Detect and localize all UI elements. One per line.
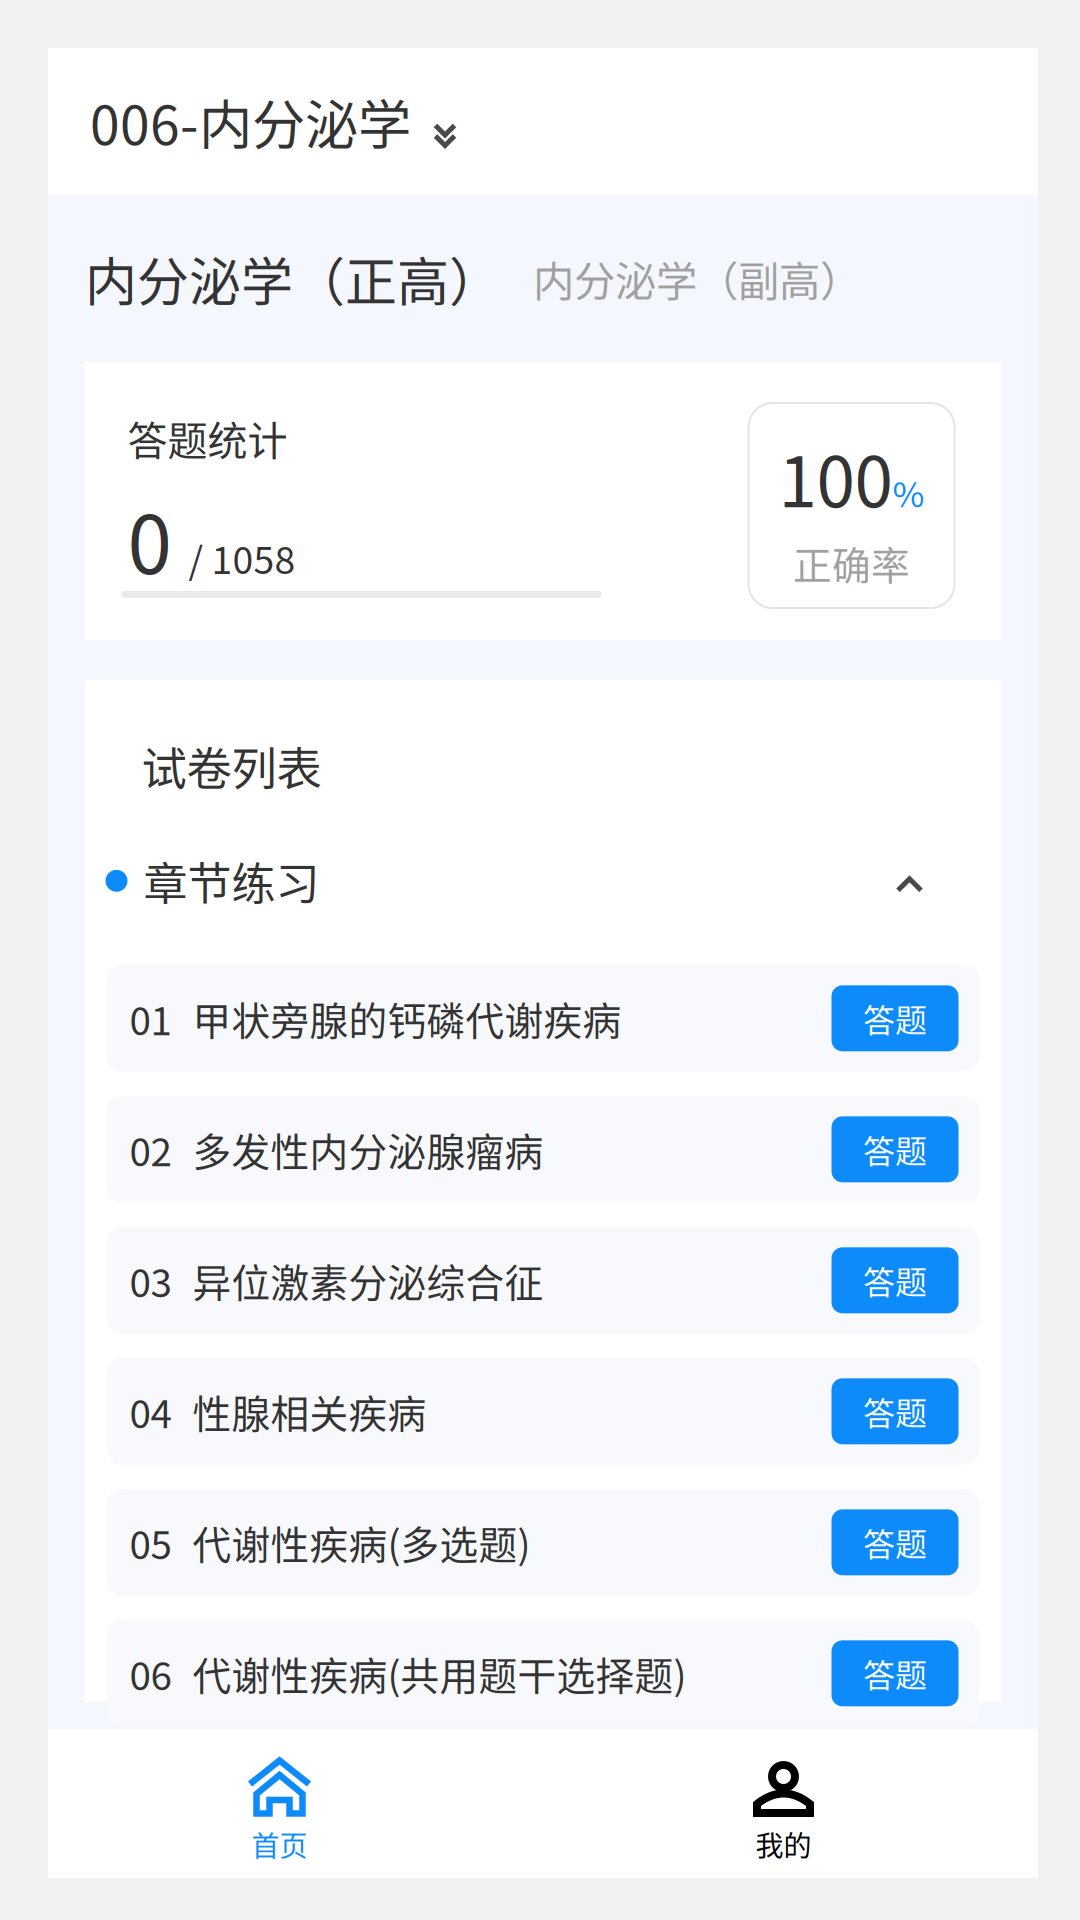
staticText: 首页 (251, 1824, 307, 1864)
staticText: 答题 (863, 1519, 927, 1565)
staticText: 章节练习 (143, 849, 319, 913)
staticText: 04 (129, 1383, 171, 1439)
button[interactable]: 内分泌学（正高） (85, 241, 501, 316)
staticText: 答题 (863, 1257, 927, 1303)
staticText: 试卷列表 (141, 733, 321, 799)
button[interactable]: 章节练习 (84, 848, 1001, 914)
staticText: 05 (129, 1514, 171, 1570)
button[interactable]: 03 (106, 1227, 979, 1334)
staticText: 01 (129, 990, 171, 1046)
button[interactable]: 答题 (831, 1116, 958, 1182)
staticText: % (892, 467, 924, 517)
staticText: 异位激素分泌综合征 (192, 1252, 543, 1308)
staticText: 答题 (863, 995, 927, 1041)
button[interactable]: 04 (106, 1358, 979, 1465)
staticText: 甲状旁腺的钙磷代谢疾病 (192, 990, 621, 1046)
button[interactable]: 答题 (831, 1509, 958, 1575)
button[interactable]: 05 (106, 1489, 979, 1596)
staticText: 答题 (863, 1126, 927, 1172)
staticText: 内分泌学（副高） (533, 249, 861, 308)
button[interactable]: 02 (106, 1096, 979, 1203)
staticText: 内分泌学（正高） (85, 241, 501, 316)
staticText: 正确率 (793, 535, 910, 591)
staticText: 答题统计 (127, 409, 287, 467)
staticText: 03 (129, 1252, 171, 1308)
button[interactable]: 006-内分泌学 (48, 48, 1038, 195)
staticText: 代谢性疾病(共用题干选择题) (192, 1645, 686, 1701)
staticText: 006-内分泌学 (90, 83, 411, 160)
staticText: 0 (127, 481, 171, 597)
button[interactable]: 答题 (831, 1640, 958, 1706)
staticText: 性腺相关疾病 (192, 1383, 426, 1439)
staticText: 我的 (755, 1824, 811, 1864)
button[interactable]: 答题 (831, 1378, 958, 1444)
staticText: 答题 (863, 1650, 927, 1696)
staticText: / 1058 (188, 531, 295, 585)
staticText: 答题 (863, 1388, 927, 1434)
staticText: 02 (129, 1121, 171, 1177)
staticText: 代谢性疾病(多选题) (192, 1514, 530, 1570)
staticText: 多发性内分泌腺瘤病 (192, 1121, 543, 1177)
button[interactable]: 我的 (512, 1729, 1038, 1878)
button[interactable]: 内分泌学（副高） (533, 249, 861, 308)
button[interactable]: 01 (106, 965, 979, 1072)
button[interactable]: 首页 (48, 1729, 512, 1878)
staticText: 06 (129, 1645, 171, 1701)
staticText: 100 (778, 427, 892, 527)
button[interactable]: 答题 (831, 1247, 958, 1313)
button[interactable]: 06 (106, 1620, 979, 1727)
button[interactable]: 答题 (831, 985, 958, 1051)
